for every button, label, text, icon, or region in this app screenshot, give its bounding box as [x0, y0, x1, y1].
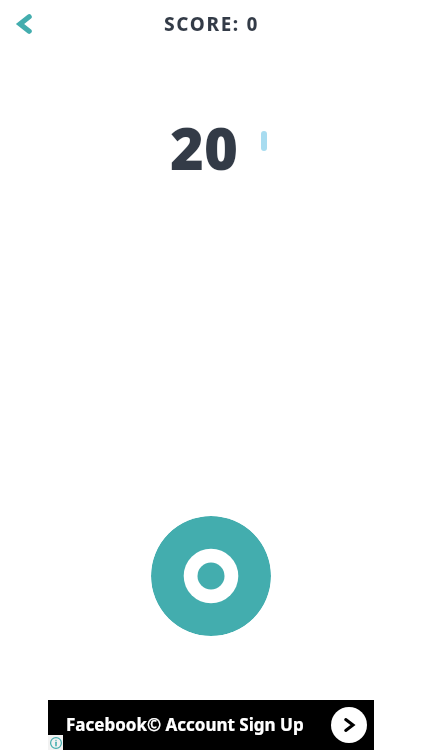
button[interactable]: Open ad — [331, 707, 367, 743]
button[interactable]: Tap target — [151, 516, 271, 636]
button[interactable]: Ad information — [48, 735, 63, 750]
button[interactable]: Back — [2, 2, 46, 46]
staticText: SCORE: 0 — [164, 11, 259, 37]
button[interactable]: Facebook© Account Sign Up — [48, 700, 374, 750]
staticText: 20 — [170, 108, 238, 172]
staticText: Facebook© Account Sign Up — [66, 713, 304, 736]
